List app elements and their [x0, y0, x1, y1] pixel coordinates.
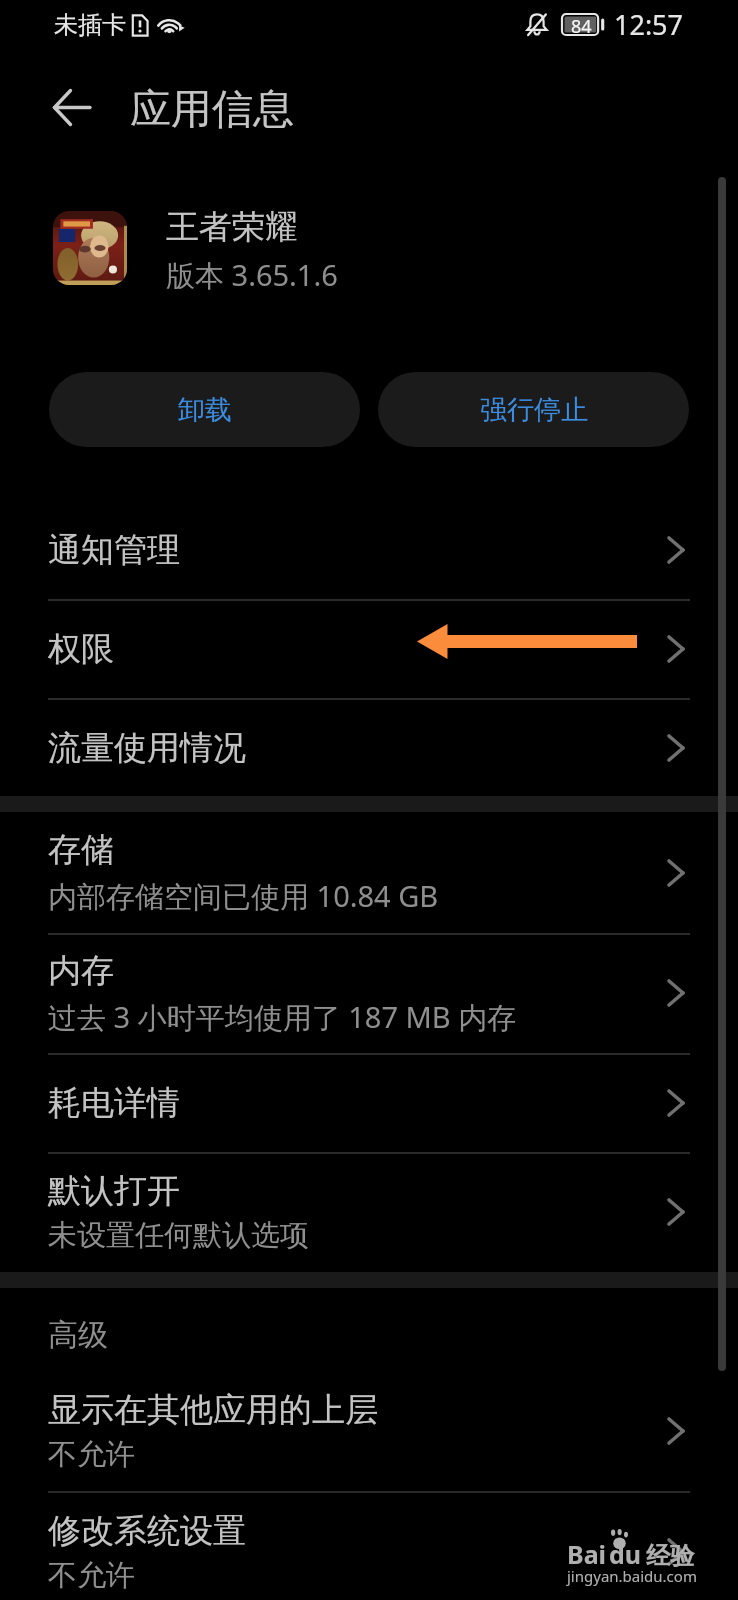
staticText: 王者荣耀 [166, 206, 298, 248]
staticText: 内存 [48, 950, 114, 992]
staticText: 内部存储空间已使用 10.84 GB [48, 876, 439, 916]
staticText: 强行停止 [480, 393, 588, 427]
staticText: 流量使用情况 [48, 727, 246, 769]
button[interactable]: 内存 [0, 933, 738, 1053]
staticText: 12:57 [614, 6, 684, 43]
staticText: 存储 [48, 829, 114, 871]
button[interactable]: 修改系统设置 [0, 1491, 738, 1600]
button[interactable]: 流量使用情况 [0, 698, 738, 797]
button[interactable]: 存储 [0, 812, 738, 933]
staticText: 未设置任何默认选项 [48, 1217, 309, 1254]
staticText: jingyan.baidu.com [567, 1566, 697, 1586]
staticText: 应用信息 [130, 84, 294, 136]
button[interactable]: 默认打开 [0, 1152, 738, 1272]
staticText: 权限 [48, 628, 114, 670]
staticText: 修改系统设置 [48, 1510, 246, 1552]
staticText: 卸载 [178, 393, 232, 427]
staticText: 显示在其他应用的上层 [48, 1389, 378, 1431]
button[interactable]: 权限 [0, 599, 738, 698]
button[interactable]: 强行停止 [378, 372, 689, 447]
staticText: 过去 3 小时平均使用了 187 MB 内存 [48, 997, 517, 1037]
staticText: 耗电详情 [48, 1082, 180, 1124]
staticText: 84 [571, 14, 592, 35]
button[interactable]: 卸载 [49, 372, 360, 447]
staticText: 版本 3.65.1.6 [166, 255, 338, 295]
button[interactable]: 耗电详情 [0, 1053, 738, 1152]
staticText: 未插卡 [54, 10, 126, 40]
staticText: 经验 [640, 1538, 695, 1571]
staticText: 默认打开 [48, 1170, 180, 1212]
staticText: 不允许 [48, 1436, 135, 1473]
button[interactable]: 通知管理 [0, 500, 738, 599]
staticText: 高级 [48, 1316, 108, 1354]
button[interactable]: 返回 [33, 68, 111, 146]
staticText: Bai [567, 1537, 607, 1571]
staticText: 通知管理 [48, 529, 180, 571]
staticText: 不允许 [48, 1557, 135, 1594]
button[interactable]: 显示在其他应用的上层 [0, 1370, 738, 1491]
staticText: du [609, 1537, 642, 1571]
